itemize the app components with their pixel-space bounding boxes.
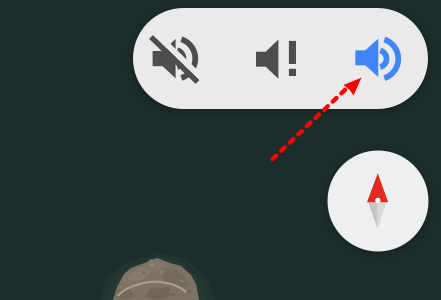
button[interactable]: Mute [0,0,441,300]
button[interactable]: Volume [133,8,428,109]
button[interactable]: Alerts only [0,0,441,300]
button[interactable]: Compass [327,150,428,251]
button[interactable]: Sound on [0,0,441,300]
